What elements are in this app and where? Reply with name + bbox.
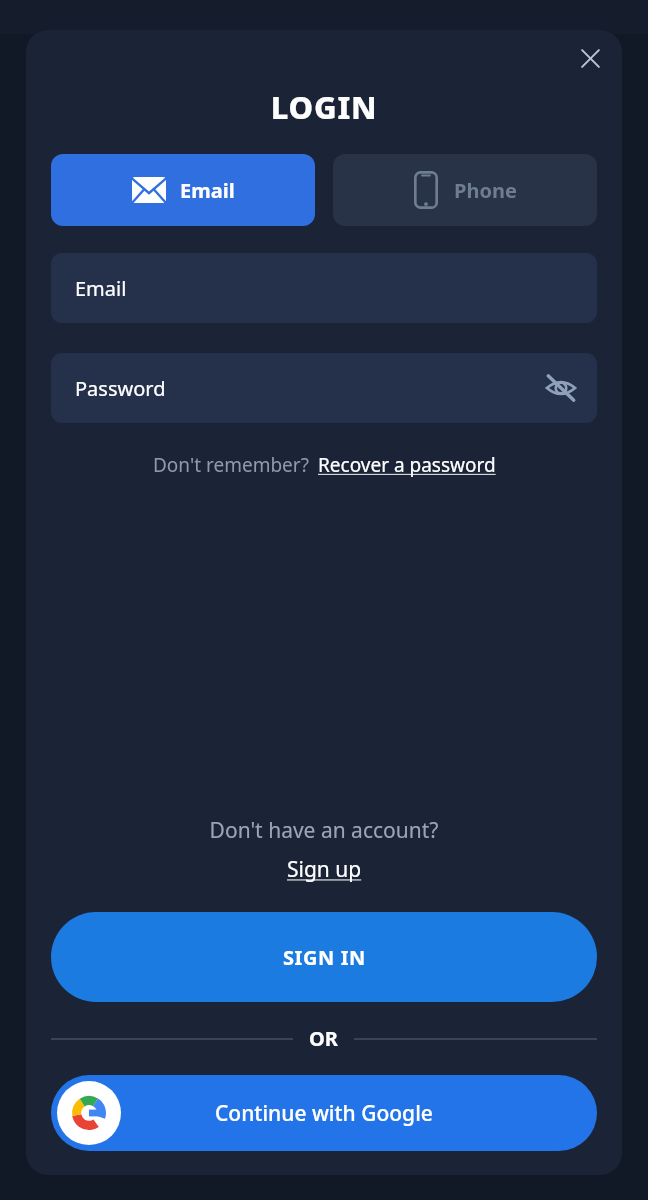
button[interactable]: Password — [51, 353, 597, 423]
staticText: LOGIN — [26, 86, 622, 128]
staticText: Don't remember? — [153, 452, 309, 478]
button[interactable]: Email — [51, 253, 597, 323]
staticText: Password — [75, 375, 166, 402]
button[interactable]: SIGN IN — [51, 912, 597, 1002]
button[interactable]: Close — [570, 38, 610, 78]
button[interactable]: Sign up — [287, 855, 362, 884]
button[interactable]: Recover a password — [318, 452, 496, 478]
staticText: Continue with Google — [215, 1099, 433, 1128]
staticText: Email — [75, 275, 127, 302]
button[interactable]: Email — [51, 154, 315, 226]
button[interactable]: Phone — [333, 154, 597, 226]
staticText: Phone — [454, 177, 517, 204]
staticText: OR — [309, 1025, 338, 1052]
staticText: Sign up — [287, 855, 362, 884]
staticText: Recover a password — [318, 452, 496, 478]
staticText: Email — [180, 177, 235, 204]
button[interactable]: Continue with Google — [51, 1075, 597, 1151]
button[interactable]: Show password — [539, 366, 583, 410]
staticText: SIGN IN — [283, 944, 366, 971]
staticText: Don't have an account? — [26, 816, 622, 845]
